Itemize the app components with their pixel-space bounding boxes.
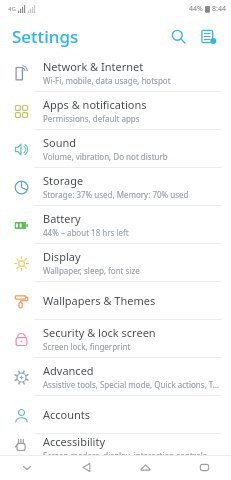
staticText: Volume, vibration, Do not disturb [43, 151, 168, 162]
button[interactable]: Storage [0, 168, 231, 205]
staticText: 8:44 [212, 4, 226, 14]
staticText: Settings [12, 25, 79, 48]
button[interactable]: Wallpapers & Themes [0, 282, 231, 319]
staticText: Accounts [43, 407, 91, 422]
button[interactable]: Network & Internet [0, 54, 231, 91]
staticText: Accessibility [43, 434, 106, 449]
button[interactable]: Apps & notifications [0, 92, 231, 129]
staticText: Sound [43, 135, 77, 150]
button[interactable]: Home [132, 455, 158, 480]
staticText: Display [43, 249, 81, 264]
staticText: Network & Internet [43, 59, 144, 74]
staticText: Screen readers, display, interaction con… [43, 450, 207, 455]
staticText: Apps & notifications [43, 97, 147, 112]
staticText: Assistive tools, Special mode, Quick act… [43, 379, 220, 390]
button[interactable]: Feedback [193, 21, 223, 51]
staticText: Storage [43, 173, 84, 188]
staticText: Security & lock screen [43, 325, 156, 340]
button[interactable]: Recent apps [191, 455, 217, 480]
staticText: Screen lock, fingerprint [43, 341, 131, 352]
staticText: Advanced [43, 363, 94, 378]
staticText: Wi-Fi, mobile, data usage, hotspot [43, 75, 171, 86]
button[interactable]: Display [0, 244, 231, 281]
button[interactable]: Sound [0, 130, 231, 167]
button[interactable]: Battery [0, 206, 231, 243]
staticText: Permissions, default apps [43, 113, 140, 124]
staticText: Wallpaper, sleep, font size [43, 265, 140, 276]
staticText: 44% – about 18 hrs left [43, 227, 129, 238]
button[interactable]: Accounts [0, 396, 231, 433]
staticText: Battery [43, 211, 81, 226]
button[interactable]: Advanced [0, 358, 231, 395]
button[interactable]: Back [73, 455, 99, 480]
staticText: 44% [189, 4, 203, 14]
staticText: 4G [8, 5, 16, 13]
button[interactable]: Search [163, 21, 193, 51]
button[interactable]: Security & lock screen [0, 320, 231, 357]
staticText: Wallpapers & Themes [43, 293, 156, 308]
button[interactable]: Hide navigation bar [14, 455, 40, 480]
button[interactable]: Accessibility [0, 434, 231, 455]
staticText: Storage: 37% used, Memory: 70% used [43, 189, 189, 200]
